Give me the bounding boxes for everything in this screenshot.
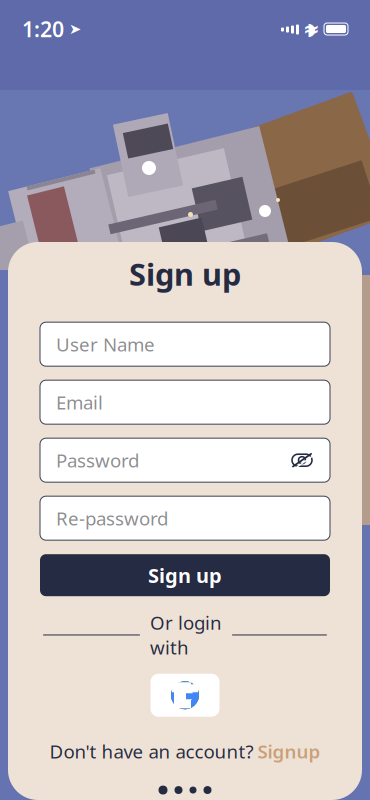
staticText: ≈ [303, 18, 320, 40]
button[interactable]: Sign up [40, 554, 330, 596]
staticText: Email [56, 390, 103, 415]
button[interactable]: User Name [40, 322, 330, 366]
staticText: Sign up [129, 253, 241, 294]
button[interactable]: Re-password [40, 496, 330, 540]
button[interactable]: Email [40, 380, 330, 424]
button[interactable]: Sign in with Google [150, 674, 219, 717]
staticText: ➤ [69, 21, 81, 37]
staticText: 1:20 [22, 15, 64, 43]
staticText: Don't have an account? [49, 739, 253, 764]
staticText: ◗ [307, 19, 316, 39]
staticText: User Name [56, 332, 155, 357]
staticText: Signup [257, 739, 320, 764]
staticText: Sign up [148, 562, 222, 588]
staticText: Re-password [56, 506, 168, 531]
staticText: Password [56, 448, 139, 473]
button[interactable]: Password [40, 438, 330, 482]
staticText: Or login with [150, 610, 222, 660]
button[interactable]: Don't have an account? [49, 739, 320, 764]
